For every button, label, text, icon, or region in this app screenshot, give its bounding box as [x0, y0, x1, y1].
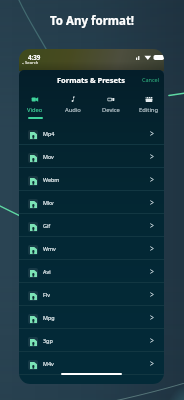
staticText: Gif [43, 222, 51, 229]
button[interactable]: Wmv [19, 237, 164, 260]
staticText: Wmv [43, 245, 56, 252]
staticText: M4v [43, 360, 54, 367]
staticText: Mpg [43, 314, 55, 321]
staticText: Editing [139, 106, 159, 114]
staticText: Video [27, 106, 43, 114]
staticText: Mp4 [43, 130, 55, 137]
button[interactable]: Audio [62, 95, 84, 123]
button[interactable]: Video [24, 95, 46, 123]
button[interactable]: Cancel [137, 72, 164, 87]
button[interactable]: Mkv [19, 191, 164, 214]
button[interactable]: 3gp [19, 329, 164, 352]
button[interactable]: Flv [19, 283, 164, 306]
staticText: 4:39 [28, 53, 41, 61]
button[interactable]: Mov [19, 145, 164, 168]
staticText: Search [25, 60, 39, 66]
staticText: Device [102, 106, 120, 114]
button[interactable]: Gif [19, 214, 164, 237]
staticText: To Any format! [50, 13, 135, 29]
button[interactable]: Avi [19, 260, 164, 283]
staticText: Flv [43, 291, 50, 298]
staticText: Cancel [142, 76, 160, 83]
staticText: Avi [43, 268, 51, 275]
staticText: Formats & Presets [57, 75, 126, 85]
button[interactable]: Webm [19, 168, 164, 191]
button[interactable]: Device [100, 95, 122, 123]
button[interactable]: Mp4 [19, 122, 164, 145]
staticText: Mov [43, 153, 54, 160]
button[interactable]: Mpg [19, 306, 164, 329]
staticText: 3gp [43, 337, 53, 344]
button[interactable]: M4v [19, 352, 164, 375]
staticText: Mkv [43, 199, 54, 206]
button[interactable]: Editing [138, 95, 160, 123]
staticText: Webm [43, 176, 60, 183]
staticText: Audio [65, 106, 81, 114]
